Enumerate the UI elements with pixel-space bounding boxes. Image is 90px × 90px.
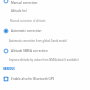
staticText: Manual correction [11,1,38,5]
button[interactable] [0,46,90,64]
button[interactable] [0,26,90,44]
button[interactable]: Altitude NMEA correction [1,46,11,56]
button[interactable] [0,74,90,86]
staticText: Altitude NMEA correction [11,49,48,53]
staticText: Improve altitude by values from NMEA dat… [9,58,79,62]
staticText: Automatic correction from global Geoid m… [9,39,67,43]
button[interactable]: Enable also for Bluetooth GPS [2,75,10,83]
button[interactable]: Manual correction [1,0,11,6]
staticText: VARIOUS [3,67,15,71]
button[interactable] [0,0,90,24]
staticText: Enable also for Bluetooth GPS [11,77,55,81]
staticText: Altitude (m) [11,9,27,13]
button[interactable]: Automatic correction [1,26,11,36]
staticText: Manual correction of altitude [10,19,46,23]
staticText: Automatic correction [11,29,42,33]
